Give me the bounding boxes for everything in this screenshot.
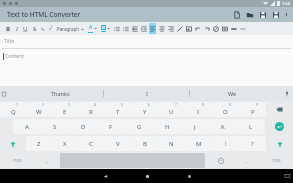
button[interactable]: We	[190, 86, 275, 101]
button[interactable]: Save	[256, 7, 269, 22]
button[interactable]: Bullet list	[113, 23, 120, 34]
staticText: X	[63, 140, 67, 148]
button[interactable]: 4	[78, 102, 104, 117]
button[interactable]: ,	[35, 153, 59, 168]
button[interactable]: Align right	[167, 23, 174, 34]
staticText: ?	[251, 140, 254, 148]
button[interactable]: B	[3, 22, 12, 35]
button[interactable]: 6	[131, 102, 158, 117]
button[interactable]: Shift	[0, 136, 26, 151]
button[interactable]: New document	[230, 7, 243, 22]
button[interactable]: Horizontal rule	[230, 23, 237, 34]
button[interactable]: 2	[26, 102, 52, 117]
staticText: I	[197, 108, 200, 116]
staticText: 6	[148, 103, 150, 107]
staticText: U	[23, 25, 28, 33]
staticText: Text to HTML Converter	[7, 10, 81, 19]
staticText: T	[116, 108, 120, 116]
button[interactable]: D	[69, 119, 97, 134]
button[interactable]: Highlight colour	[99, 22, 107, 35]
button[interactable]: x²	[47, 22, 55, 35]
button[interactable]: Z	[26, 136, 52, 151]
button[interactable]: ?123	[0, 153, 35, 168]
button[interactable]: Undo	[194, 23, 201, 34]
button[interactable]: Insert link	[176, 23, 183, 34]
button[interactable]: Align left	[149, 23, 156, 34]
staticText: 9	[229, 103, 231, 107]
button[interactable]: Line	[239, 23, 246, 34]
button[interactable]: M	[185, 136, 212, 151]
button[interactable]: Open folder	[243, 7, 256, 22]
button[interactable]: J	[181, 119, 209, 134]
button[interactable]: A	[13, 119, 41, 134]
button[interactable]: Backspace	[266, 102, 293, 117]
button[interactable]: Emoji	[206, 153, 235, 168]
staticText: 4	[94, 103, 96, 107]
button[interactable]: 3	[52, 102, 78, 117]
button[interactable]: Text colour	[86, 22, 94, 35]
button[interactable]: I	[12, 22, 21, 35]
staticText: A	[25, 123, 29, 131]
button[interactable]: Numbered list	[122, 23, 129, 34]
button[interactable]: 7	[158, 102, 185, 117]
button[interactable]: X	[52, 136, 78, 151]
button[interactable]: G	[125, 119, 153, 134]
button[interactable]: U	[21, 22, 30, 35]
button[interactable]: 0	[239, 102, 266, 117]
staticText: 8	[202, 103, 204, 107]
button[interactable]: Thanks	[18, 86, 103, 101]
button[interactable]: More options	[282, 7, 291, 22]
button[interactable]: Paragraph	[57, 22, 86, 35]
button[interactable]: Recents	[183, 170, 195, 182]
button[interactable]: Voice input	[284, 91, 290, 97]
button[interactable]: Clear formatting	[212, 23, 219, 34]
staticText: Paragraph	[57, 26, 80, 32]
button[interactable]: Shift	[266, 136, 293, 151]
button[interactable]: !	[212, 136, 239, 151]
staticText: K	[221, 123, 225, 131]
button[interactable]: S	[30, 22, 39, 35]
staticText: Thanks	[51, 90, 70, 97]
staticText: !	[225, 140, 227, 148]
button[interactable]: K	[209, 119, 237, 134]
button[interactable]: 9	[212, 102, 239, 117]
button[interactable]: Home	[141, 170, 153, 182]
button[interactable]: Insert image	[185, 23, 192, 34]
button[interactable]: Increase indent	[140, 23, 147, 34]
staticText: U	[169, 108, 174, 116]
button[interactable]: I	[104, 86, 189, 101]
button[interactable]: Enter	[265, 119, 293, 134]
button[interactable]: Insert table	[221, 23, 228, 34]
staticText: M	[196, 140, 202, 148]
staticText: E	[63, 108, 67, 116]
button[interactable]: ?123	[259, 153, 293, 168]
button[interactable]: Clipboard	[1, 91, 7, 97]
button[interactable]: H	[153, 119, 181, 134]
button[interactable]: 8	[185, 102, 212, 117]
button[interactable]: F	[97, 119, 125, 134]
staticText: R	[89, 108, 93, 116]
button[interactable]: S	[41, 119, 69, 134]
staticText: ?123	[272, 158, 281, 163]
button[interactable]: ?	[239, 136, 266, 151]
button[interactable]: Back	[99, 170, 111, 182]
button[interactable]: Save as	[269, 7, 282, 22]
button[interactable]: B	[131, 136, 158, 151]
button[interactable]: Hide keyboard	[284, 173, 290, 179]
button[interactable]: x₂	[39, 22, 47, 35]
button[interactable]: Redo	[203, 23, 210, 34]
button[interactable]: Decrease indent	[131, 23, 138, 34]
button[interactable]: Align center	[158, 23, 165, 34]
button[interactable]: 1	[0, 102, 26, 117]
button[interactable]: N	[158, 136, 185, 151]
staticText: C	[89, 140, 93, 148]
button[interactable]: L	[237, 119, 265, 134]
staticText: F	[109, 123, 113, 131]
button[interactable]: C	[78, 136, 104, 151]
staticText: O	[223, 108, 228, 116]
button[interactable]: 5	[104, 102, 131, 117]
button[interactable]: V	[104, 136, 131, 151]
staticText: ,	[46, 157, 48, 165]
